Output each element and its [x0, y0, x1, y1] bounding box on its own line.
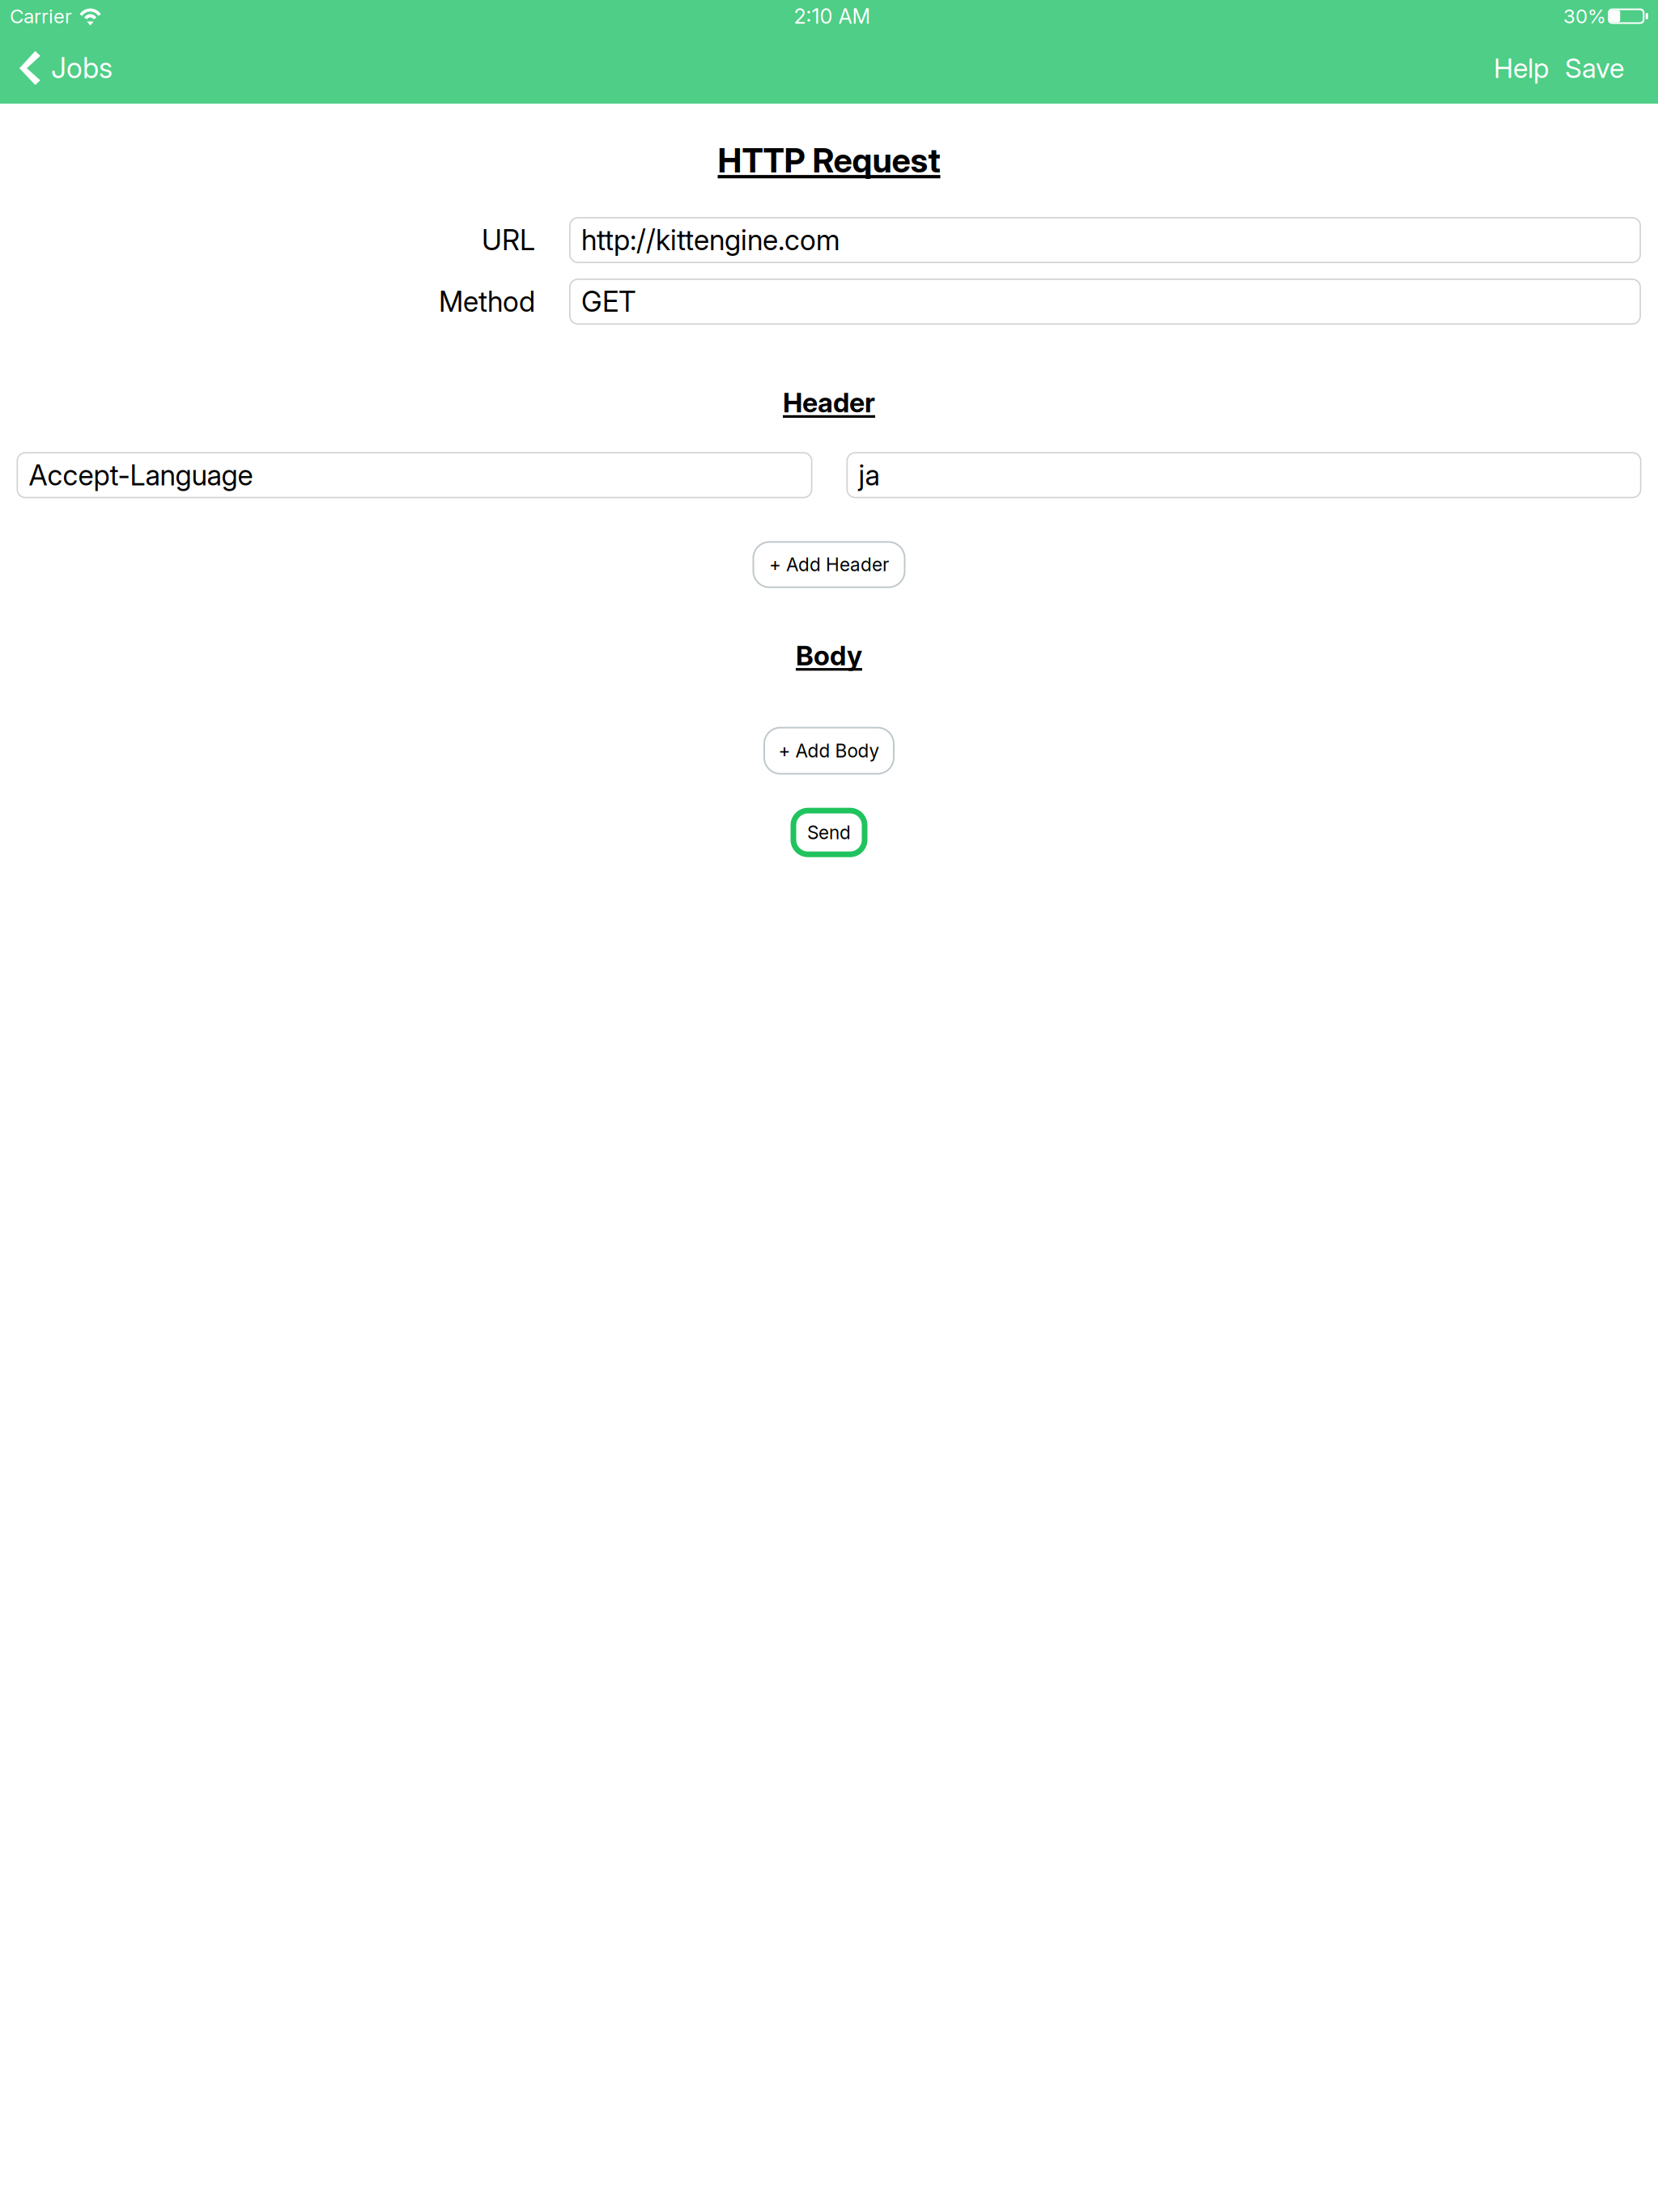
staticText: + Add Header — [769, 553, 889, 576]
staticText: + Add Body — [778, 740, 880, 762]
button[interactable]: http://kittengine.com — [569, 217, 1641, 263]
button[interactable]: + Add Header — [752, 541, 906, 588]
staticText: Jobs — [51, 51, 113, 85]
staticText: Help — [1494, 52, 1549, 84]
staticText: GET — [581, 285, 636, 319]
staticText: Carrier — [10, 4, 72, 28]
button[interactable]: Send — [791, 808, 867, 857]
staticText: Accept-Language — [29, 458, 253, 492]
button[interactable]: + Add Body — [763, 727, 895, 775]
staticText: Body — [796, 639, 862, 672]
staticText: ja — [859, 458, 880, 492]
staticText: Send — [807, 821, 851, 844]
staticText: http://kittengine.com — [581, 223, 840, 257]
staticText: 2:10 AM — [794, 4, 871, 29]
staticText: Method — [439, 285, 535, 319]
button[interactable]: Save — [1557, 32, 1658, 104]
staticText: Header — [783, 386, 875, 419]
staticText: HTTP Request — [718, 140, 940, 181]
button[interactable]: Help — [1482, 32, 1557, 104]
button[interactable]: GET — [569, 279, 1641, 325]
staticText: Save — [1565, 52, 1624, 84]
staticText: URL — [482, 223, 535, 257]
button[interactable]: Accept-Language — [17, 452, 812, 498]
button[interactable]: ja — [846, 452, 1641, 498]
button[interactable]: Jobs — [0, 32, 124, 104]
staticText: 30% — [1563, 4, 1606, 28]
